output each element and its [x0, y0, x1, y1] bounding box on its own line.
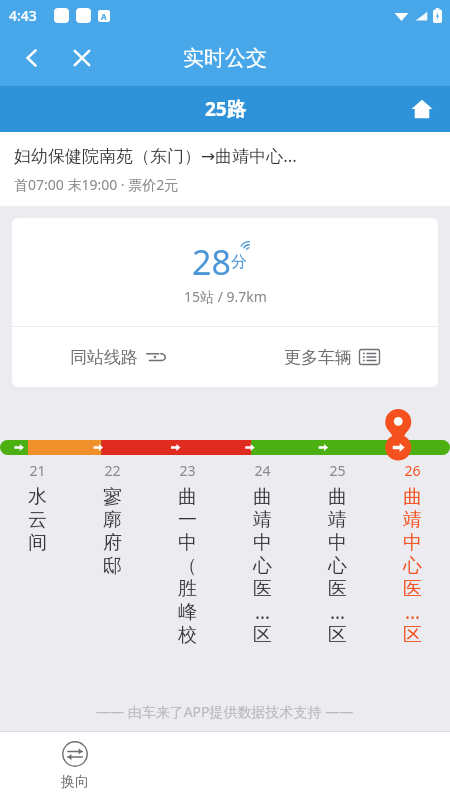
button[interactable]: 25	[300, 461, 375, 647]
button[interactable]: 24	[225, 461, 300, 647]
staticText: 28	[192, 239, 231, 285]
staticText: A	[101, 11, 107, 22]
staticText: 曲 一 中 （ 胜 峰 校	[178, 485, 197, 647]
staticText: 曲 靖 中 心 医 … 区	[328, 485, 347, 647]
button[interactable]: 26	[375, 461, 450, 647]
staticText: 26	[404, 461, 421, 480]
staticText: 23	[179, 461, 196, 480]
button[interactable]: 同站线路	[12, 327, 225, 387]
staticText: 曲 靖 中 心 医 … 区	[403, 485, 422, 647]
staticText: 寥 廓 府 邸	[103, 485, 122, 578]
staticText: 25	[329, 461, 346, 480]
button[interactable]: Home	[402, 89, 442, 129]
staticText: 实时公交	[183, 45, 267, 71]
button[interactable]: Back	[10, 36, 54, 80]
button[interactable]: 21	[0, 461, 75, 555]
staticText: —— 由车来了APP提供数据技术支持 ——	[96, 702, 354, 721]
staticText: 21	[29, 461, 46, 480]
button[interactable]: 23	[150, 461, 225, 647]
staticText: 首07:00 末19:00 · 票价2元	[14, 175, 179, 194]
staticText: 妇幼保健院南苑（东门）→曲靖中心...	[14, 144, 297, 167]
staticText: 同站线路	[70, 347, 138, 368]
staticText: 曲 靖 中 心 医 … 区	[253, 485, 272, 647]
staticText: 水 云 间	[28, 485, 47, 555]
button[interactable]: 22	[75, 461, 150, 578]
staticText: 22	[104, 461, 121, 480]
staticText: 24	[254, 461, 271, 480]
staticText: 4:43	[9, 6, 37, 25]
button[interactable]: 更多车辆	[225, 327, 438, 387]
staticText: 25路	[205, 96, 246, 122]
button[interactable]: 换向	[0, 732, 150, 800]
staticText: 15站 / 9.7km	[184, 287, 267, 306]
button[interactable]: Close	[60, 36, 104, 80]
staticText: 分	[231, 252, 247, 272]
staticText: 更多车辆	[284, 347, 352, 368]
staticText: 换向	[61, 773, 89, 791]
